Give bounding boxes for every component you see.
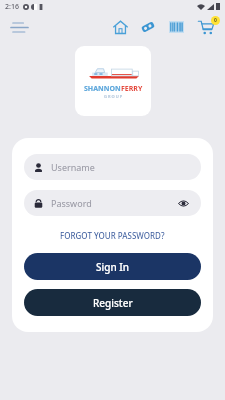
staticText: 2:16 [5,2,19,12]
button[interactable]: Scan barcode [165,16,187,38]
button[interactable]: Show password [175,195,191,211]
staticText: Password [51,197,92,209]
button[interactable]: Cart [191,13,221,40]
staticText: 0 [214,17,217,24]
staticText: FORGOT YOUR PASSWORD? [60,230,165,241]
staticText: Register [93,296,133,310]
button[interactable]: FORGOT YOUR PASSWORD? [56,228,169,243]
button[interactable]: Menu [6,14,32,40]
staticText: G R O U P [104,94,123,99]
staticText: FERRY [121,84,143,94]
staticText: Sign In [96,260,130,274]
staticText: Username [51,161,95,173]
button[interactable]: Username [24,154,201,180]
button[interactable]: Home [109,16,131,38]
button[interactable]: Sign In [24,253,201,280]
staticText: SHANNON [84,84,121,94]
button[interactable]: Password [24,190,201,216]
button[interactable]: Register [24,289,201,316]
button[interactable]: Tickets [137,16,159,38]
